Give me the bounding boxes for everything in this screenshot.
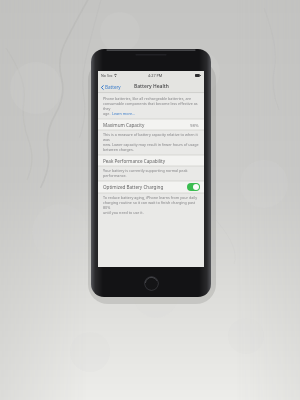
button[interactable]: Home <box>144 276 159 291</box>
button[interactable]: Optimized Battery Charging <box>98 181 204 193</box>
staticText: consumable components that become less e… <box>103 101 199 111</box>
staticText: until you need to use it. <box>103 210 144 215</box>
button[interactable]: Learn more... <box>112 111 136 116</box>
staticText: charging routine so it can wait to finis… <box>103 200 199 210</box>
staticText: This is a measure of battery capacity re… <box>103 132 199 142</box>
staticText: Battery <box>105 84 121 90</box>
staticText: Maximum Capacity <box>103 122 145 128</box>
button[interactable]: Peak Performance Capability <box>98 155 204 166</box>
staticText: Optimized Battery Charging <box>103 184 164 190</box>
staticText: new. Lower capacity may result in fewer … <box>103 142 199 147</box>
staticText: age. <box>103 111 112 116</box>
button[interactable]: Battery <box>100 83 122 91</box>
staticText: Phone batteries, like all rechargeable b… <box>103 96 191 101</box>
staticText: No Svc <box>101 73 113 78</box>
staticText: Battery Health <box>134 83 169 90</box>
staticText: 4:27 PM <box>148 73 163 78</box>
staticText: between charges. <box>103 147 134 152</box>
staticText: performance. <box>103 173 127 178</box>
staticText: 98% <box>190 122 199 128</box>
staticText: Peak Performance Capability <box>103 158 166 164</box>
button[interactable]: Maximum Capacity <box>98 119 204 130</box>
staticText: Your battery is currently supporting nor… <box>103 168 188 173</box>
button[interactable]: Optimized Battery Charging toggle, on <box>187 183 200 191</box>
staticText: To reduce battery aging, iPhone learns f… <box>103 195 198 200</box>
